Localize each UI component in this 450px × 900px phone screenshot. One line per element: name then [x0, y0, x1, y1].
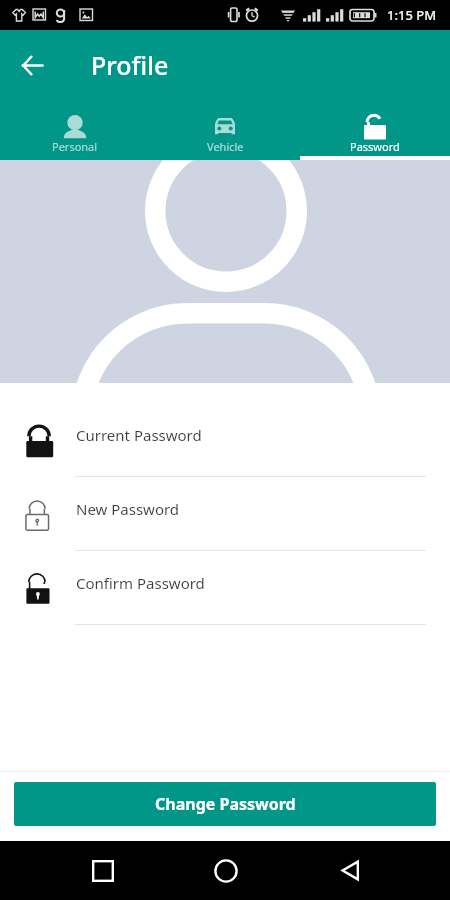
- button[interactable]: Current Password: [0, 403, 450, 477]
- button[interactable]: Recent apps: [70, 841, 135, 900]
- button[interactable]: Password: [300, 102, 450, 160]
- staticText: Change Password: [155, 793, 296, 815]
- staticText: Confirm Password: [76, 573, 205, 593]
- button[interactable]: Back: [317, 841, 382, 900]
- staticText: Current Password: [76, 425, 202, 445]
- button[interactable]: Vehicle: [150, 102, 300, 160]
- staticText: 1:15 PM: [387, 6, 437, 24]
- button[interactable]: Back: [11, 44, 53, 86]
- button[interactable]: New Password: [0, 477, 450, 551]
- button[interactable]: Home: [193, 841, 258, 900]
- staticText: Personal: [52, 139, 98, 154]
- staticText: New Password: [76, 499, 180, 519]
- button[interactable]: Change Password: [14, 782, 436, 826]
- button[interactable]: Personal: [0, 102, 150, 160]
- button[interactable]: Confirm Password: [0, 551, 450, 625]
- staticText: Vehicle: [207, 139, 244, 154]
- staticText: Password: [350, 139, 400, 154]
- staticText: Profile: [91, 48, 169, 82]
